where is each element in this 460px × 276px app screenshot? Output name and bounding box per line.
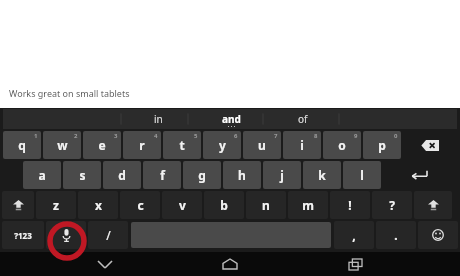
staticText: in: [154, 112, 163, 126]
staticText: j: [280, 167, 284, 183]
staticText: g: [198, 167, 206, 183]
button[interactable]: w: [43, 131, 81, 159]
button[interactable]: l: [343, 161, 381, 189]
button[interactable]: !: [330, 191, 370, 219]
button[interactable]: m: [288, 191, 328, 219]
staticText: l: [360, 167, 364, 183]
staticText: i: [300, 137, 304, 153]
button[interactable]: ,: [334, 221, 374, 249]
button[interactable]: ?123: [2, 221, 44, 249]
button[interactable]: c: [120, 191, 160, 219]
button[interactable]: Emoji: [418, 221, 458, 249]
button[interactable]: of: [288, 109, 318, 129]
button[interactable]: d: [103, 161, 141, 189]
staticText: 4: [154, 132, 158, 140]
staticText: 0: [394, 132, 398, 140]
button[interactable]: h: [223, 161, 261, 189]
button[interactable]: t: [163, 131, 201, 159]
button[interactable]: Backspace: [402, 130, 458, 160]
staticText: k: [318, 167, 326, 183]
button[interactable]: Home: [210, 252, 250, 276]
button[interactable]: z: [36, 191, 76, 219]
staticText: c: [137, 197, 144, 213]
staticText: a: [38, 167, 46, 183]
staticText: and: [222, 112, 241, 126]
button[interactable]: s: [63, 161, 101, 189]
staticText: z: [53, 197, 59, 213]
staticText: t: [179, 137, 185, 153]
button[interactable]: Shift: [2, 191, 34, 219]
button[interactable]: f: [143, 161, 181, 189]
staticText: n: [262, 197, 270, 213]
staticText: y: [219, 137, 226, 153]
staticText: q: [18, 137, 26, 153]
button[interactable]: u: [243, 131, 281, 159]
button[interactable]: y: [203, 131, 241, 159]
staticText: .: [394, 227, 398, 243]
button[interactable]: q: [3, 131, 41, 159]
button[interactable]: Back: [85, 252, 125, 276]
staticText: b: [220, 197, 228, 213]
button[interactable]: o: [323, 131, 361, 159]
staticText: m: [302, 197, 314, 213]
button[interactable]: e: [83, 131, 121, 159]
button[interactable]: Voice input: [46, 221, 86, 249]
staticText: r: [139, 137, 145, 153]
staticText: of: [298, 112, 308, 126]
button[interactable]: ?: [372, 191, 412, 219]
staticText: ?: [389, 197, 395, 213]
button[interactable]: Recents: [335, 252, 375, 276]
staticText: h: [238, 167, 246, 183]
staticText: 1: [34, 132, 38, 140]
button[interactable]: k: [303, 161, 341, 189]
staticText: e: [98, 137, 106, 153]
button[interactable]: /: [88, 221, 128, 249]
staticText: x: [95, 197, 102, 213]
staticText: p: [378, 137, 386, 153]
button[interactable]: n: [246, 191, 286, 219]
staticText: /: [106, 227, 111, 243]
button[interactable]: i: [283, 131, 321, 159]
staticText: v: [179, 197, 186, 213]
button[interactable]: p: [363, 131, 401, 159]
button[interactable]: j: [263, 161, 301, 189]
button[interactable]: x: [78, 191, 118, 219]
staticText: 3: [114, 132, 118, 140]
button[interactable]: in: [143, 109, 173, 129]
staticText: s: [79, 167, 86, 183]
staticText: ?123: [14, 230, 32, 241]
staticText: d: [118, 167, 126, 183]
staticText: 8: [314, 132, 318, 140]
staticText: 5: [194, 132, 198, 140]
staticText: f: [160, 167, 165, 183]
button[interactable]: v: [162, 191, 202, 219]
button[interactable]: r: [123, 131, 161, 159]
staticText: u: [258, 137, 266, 153]
button[interactable]: a: [23, 161, 61, 189]
staticText: 2: [74, 132, 78, 140]
button[interactable]: Enter: [382, 160, 456, 190]
staticText: w: [57, 137, 68, 153]
button[interactable]: .: [376, 221, 416, 249]
button[interactable]: and: [211, 109, 251, 129]
staticText: 6: [234, 132, 238, 140]
staticText: ,: [352, 227, 356, 243]
staticText: Works great on small tablets: [9, 87, 130, 99]
staticText: o: [338, 137, 346, 153]
staticText: !: [348, 197, 352, 213]
staticText: 9: [354, 132, 358, 140]
button[interactable]: b: [204, 191, 244, 219]
staticText: 7: [274, 132, 278, 140]
button[interactable]: Shift: [414, 191, 452, 219]
button[interactable]: g: [183, 161, 221, 189]
